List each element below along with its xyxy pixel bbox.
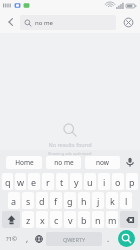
staticText: no me [35,19,53,27]
button[interactable]: Change language [34,230,44,247]
button[interactable]: c [50,211,62,228]
staticText: b [81,214,87,226]
button[interactable]: now [85,156,120,169]
staticText: m [108,214,117,226]
staticText: s [26,195,31,207]
button[interactable]: ?1© [2,230,21,247]
staticText: c [54,214,59,226]
staticText: r [46,176,50,188]
button[interactable]: w [15,173,26,190]
staticText: , [26,233,29,244]
button[interactable]: i [98,173,110,190]
staticText: ?1© [6,235,18,243]
button[interactable]: Shift [2,211,20,228]
button[interactable]: r [42,173,54,190]
staticText: e [31,176,37,188]
button[interactable]: . [104,230,113,247]
button[interactable]: n [92,211,104,228]
button[interactable]: Space [46,232,102,246]
staticText: u [87,176,93,188]
button[interactable]: f [50,192,62,209]
staticText: x [40,214,45,226]
staticText: k [110,195,115,207]
button[interactable]: Search [118,230,135,247]
staticText: Showing ads optimized [48,151,92,156]
button[interactable]: t [56,173,68,190]
staticText: j [97,195,100,207]
button[interactable]: Home [6,156,42,169]
button[interactable]: no me [46,156,81,169]
button[interactable]: e [28,173,40,190]
button[interactable]: u [84,173,96,190]
staticText: f [54,195,58,207]
button[interactable]: q [2,173,13,190]
button[interactable]: , [23,230,32,247]
button[interactable]: Backspace [120,211,138,228]
button[interactable]: x [36,211,48,228]
staticText: no me [54,158,74,167]
staticText: v [68,214,73,226]
button[interactable]: no me [20,15,116,30]
staticText: i [103,176,106,188]
button[interactable]: Back [2,13,20,31]
button[interactable]: Clear search [120,14,136,30]
staticText: z [26,214,31,226]
button[interactable]: d [36,192,48,209]
button[interactable]: p [126,173,138,190]
button[interactable]: a [8,192,20,209]
staticText: . [107,233,110,244]
staticText: No results found [48,141,92,148]
button[interactable]: k [106,192,118,209]
staticText: y [74,176,79,188]
staticText: QWERTY [63,236,86,243]
button[interactable]: m [106,211,118,228]
button[interactable]: o [112,173,124,190]
button[interactable]: Voice input [123,155,137,169]
staticText: d [39,195,45,207]
staticText: t [60,176,64,188]
staticText: Home [15,158,34,167]
button[interactable]: s [22,192,34,209]
button[interactable]: l [120,192,132,209]
staticText: l [125,195,128,207]
staticText: q [5,176,11,188]
staticText: p [129,176,135,188]
staticText: g [67,195,73,207]
staticText: h [81,195,87,207]
staticText: w [17,176,25,188]
button[interactable]: y [70,173,82,190]
button[interactable]: b [78,211,90,228]
button[interactable]: g [64,192,76,209]
button[interactable]: v [64,211,76,228]
staticText: o [115,176,121,188]
button[interactable]: h [78,192,90,209]
button[interactable]: j [92,192,104,209]
button[interactable]: z [22,211,34,228]
staticText: now [96,158,109,167]
staticText: a [11,195,17,207]
staticText: n [95,214,101,226]
